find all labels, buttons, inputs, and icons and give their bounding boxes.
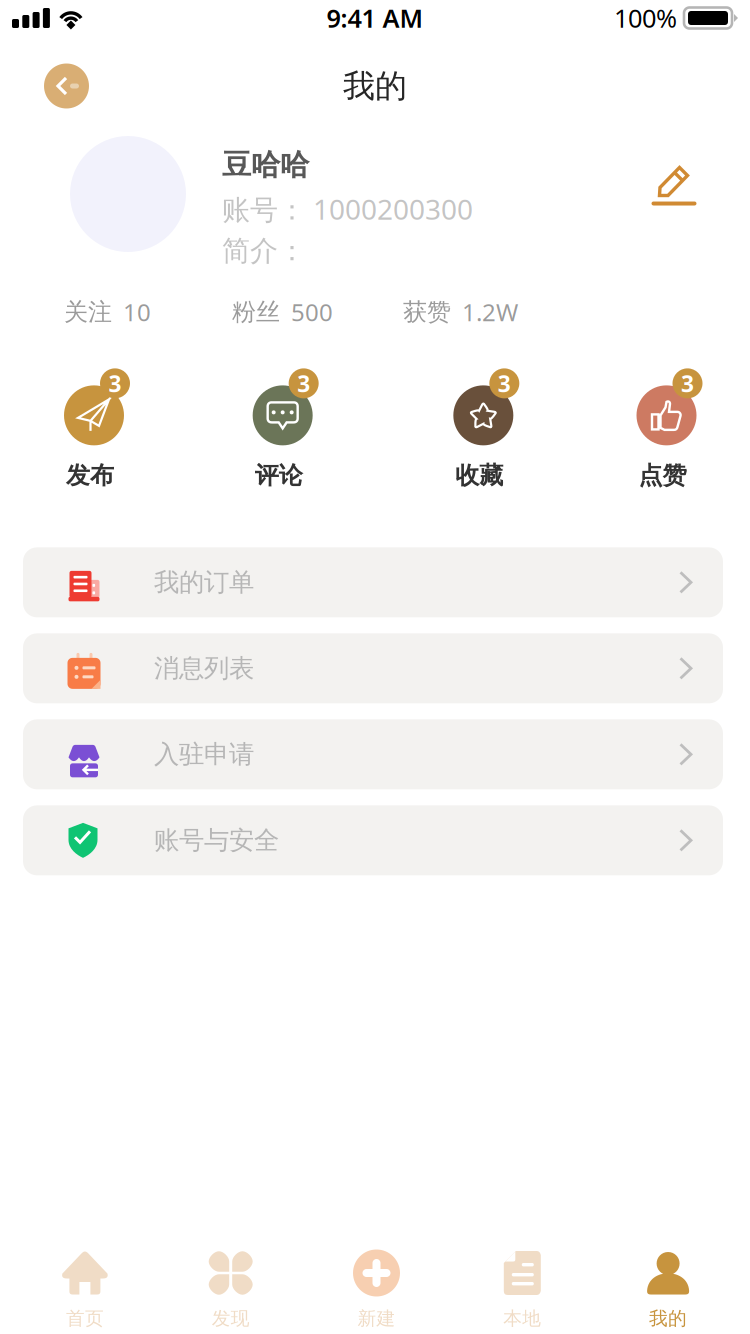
staticText: 1.2W [462,296,518,328]
staticText: 3 [498,368,511,398]
button[interactable]: 我的订单 [23,547,723,617]
staticText: 发布 [66,461,114,490]
staticText: 我的 [343,66,407,106]
button[interactable]: 首页 [12,1251,158,1330]
button[interactable]: 本地 [449,1251,595,1330]
button[interactable]: 新建 [304,1251,449,1330]
staticText: 账号与安全 [154,825,279,856]
staticText: 我的订单 [154,567,254,598]
staticText: 点赞 [638,461,686,490]
button[interactable]: 3 [450,360,516,490]
staticText: 3 [297,368,310,398]
staticText: 评论 [255,461,303,490]
staticText: 豆哈哈 [222,147,309,183]
staticText: 3 [681,368,694,398]
button[interactable]: 3 [250,360,316,490]
button[interactable]: 我的 [595,1251,741,1330]
button[interactable]: 发现 [158,1251,304,1330]
staticText: 首页 [66,1307,104,1330]
staticText: 我的 [649,1307,687,1330]
button[interactable]: Edit profile [650,163,698,207]
button[interactable]: 3 [61,360,127,490]
button[interactable]: 3 [633,360,699,490]
staticText: 获赞 [403,297,451,327]
staticText: 发现 [212,1307,250,1330]
staticText: 新建 [357,1307,395,1330]
staticText: 10 [123,296,151,328]
staticText: 3 [108,368,121,398]
staticText: 关注 [64,297,112,327]
staticText: 简介： [222,234,306,268]
staticText: 本地 [503,1307,541,1330]
staticText: 粉丝 [232,297,280,327]
button[interactable]: 入驻申请 [23,719,723,789]
staticText: 入驻申请 [154,739,254,770]
staticText: 收藏 [455,461,503,490]
staticText: 9:41 AM [326,1,423,35]
button[interactable]: 消息列表 [23,633,723,703]
staticText: 100% [614,1,677,35]
staticText: 消息列表 [154,653,254,684]
button[interactable]: 账号与安全 [23,805,723,875]
button[interactable]: Back [44,63,89,108]
staticText: 账号： 1000200300 [222,190,473,228]
staticText: 500 [291,296,333,328]
